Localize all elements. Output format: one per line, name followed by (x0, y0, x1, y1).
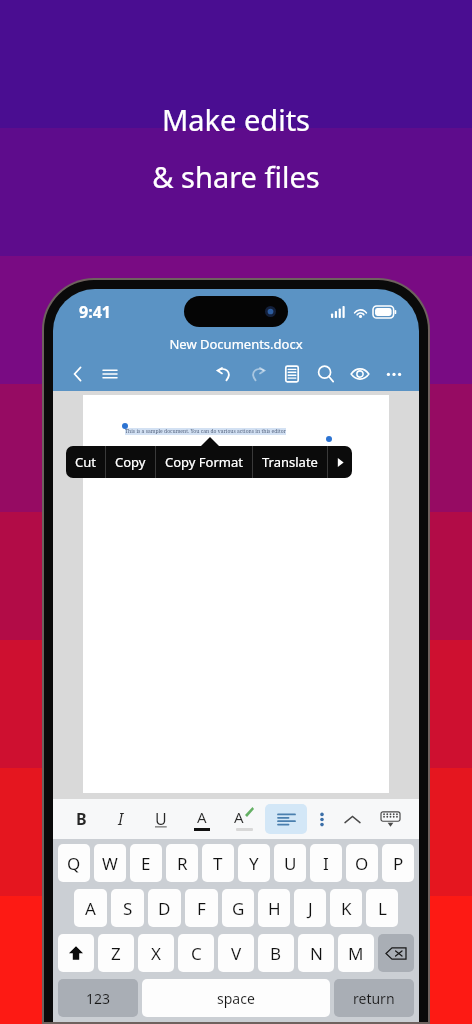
button[interactable]: K (330, 889, 362, 927)
staticText: Cut (75, 453, 96, 471)
button[interactable]: Align left (265, 804, 307, 834)
button[interactable]: I (310, 844, 342, 882)
button[interactable]: P (382, 844, 414, 882)
staticText: space (217, 989, 255, 1008)
button[interactable]: Translate (253, 446, 327, 478)
button[interactable]: Text color (181, 799, 223, 839)
button[interactable]: B (258, 934, 294, 972)
button[interactable]: Backspace (378, 934, 414, 972)
button[interactable]: Copy Format (156, 446, 252, 478)
button[interactable]: Search (313, 361, 339, 387)
button[interactable]: U (274, 844, 306, 882)
staticText: A (234, 807, 244, 827)
staticText: New Documents.docx (53, 335, 419, 353)
staticText: This is a sample document. You can do va… (125, 428, 286, 435)
button[interactable]: return (334, 979, 414, 1017)
staticText: W (102, 852, 118, 875)
button[interactable]: Document (279, 361, 305, 387)
staticText: Y (249, 852, 259, 875)
staticText: J (308, 897, 313, 920)
staticText: T (213, 852, 223, 875)
staticText: A (197, 807, 207, 827)
button[interactable]: T (202, 844, 234, 882)
button[interactable]: U (141, 799, 181, 839)
staticText: H (268, 897, 281, 920)
button[interactable]: G (222, 889, 254, 927)
button[interactable]: R (166, 844, 198, 882)
staticText: U (284, 852, 297, 875)
button[interactable]: Y (238, 844, 270, 882)
staticText: R (177, 852, 188, 875)
button[interactable]: Hide keyboard (369, 799, 411, 839)
staticText: P (393, 852, 404, 875)
button[interactable]: X (138, 934, 174, 972)
button[interactable]: space (142, 979, 330, 1017)
staticText: G (232, 897, 245, 920)
button[interactable]: C (178, 934, 214, 972)
staticText: Copy Format (165, 453, 243, 471)
button[interactable]: Undo (211, 361, 237, 387)
button[interactable]: V (218, 934, 254, 972)
button[interactable]: More options (381, 361, 407, 387)
button[interactable]: M (338, 934, 374, 972)
staticText: 123 (86, 989, 111, 1008)
button[interactable]: 123 (58, 979, 138, 1017)
button[interactable]: S (111, 889, 144, 927)
button[interactable]: Copy (106, 446, 155, 478)
staticText: B (270, 942, 282, 965)
button[interactable]: E (130, 844, 162, 882)
staticText: Copy (115, 453, 146, 471)
staticText: D (158, 897, 171, 920)
staticText: L (378, 897, 387, 920)
button[interactable]: J (294, 889, 326, 927)
button[interactable]: Highlight (223, 799, 265, 839)
staticText: Make edits (162, 100, 310, 139)
button[interactable]: N (298, 934, 334, 972)
staticText: K (341, 897, 352, 920)
button[interactable]: A (74, 889, 107, 927)
staticText: 9:41 (79, 301, 111, 323)
button[interactable]: Collapse (336, 799, 369, 839)
staticText: Q (67, 852, 81, 875)
button[interactable]: Z (98, 934, 134, 972)
button[interactable]: Back (65, 361, 91, 387)
staticText: N (310, 942, 323, 965)
button[interactable]: More formatting (307, 799, 336, 839)
staticText: I (118, 808, 124, 830)
button[interactable]: Redo (245, 361, 271, 387)
staticText: & share files (152, 157, 320, 196)
staticText: X (151, 942, 161, 965)
staticText: E (141, 852, 151, 875)
staticText: F (197, 897, 206, 920)
button[interactable]: O (346, 844, 378, 882)
staticText: return (353, 989, 395, 1008)
button[interactable]: More (328, 446, 352, 478)
staticText: B (76, 808, 87, 830)
staticText: Z (111, 942, 121, 965)
button[interactable]: Shift (58, 934, 94, 972)
staticText: I (323, 852, 329, 875)
button[interactable]: W (94, 844, 126, 882)
staticText: Translate (262, 453, 318, 471)
button[interactable]: Q (58, 844, 90, 882)
staticText: V (231, 942, 242, 965)
staticText: A (85, 897, 96, 920)
button[interactable]: L (366, 889, 398, 927)
button[interactable]: I (101, 799, 141, 839)
staticText: U (155, 808, 167, 830)
button[interactable]: H (258, 889, 290, 927)
button[interactable]: B (61, 799, 101, 839)
staticText: S (123, 897, 133, 920)
staticText: M (348, 942, 364, 965)
button[interactable]: Cut (66, 446, 105, 478)
button[interactable]: F (185, 889, 218, 927)
button[interactable]: View (347, 361, 373, 387)
button[interactable]: Menu (97, 361, 123, 387)
button[interactable]: D (148, 889, 181, 927)
staticText: C (191, 942, 202, 965)
staticText: O (355, 852, 369, 875)
